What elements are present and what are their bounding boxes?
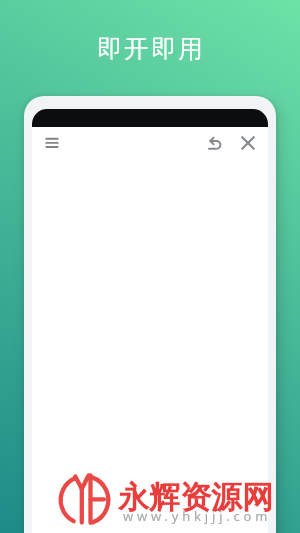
staticText: 永辉资源网 bbox=[118, 478, 273, 517]
staticText: 即开即用 bbox=[96, 33, 204, 64]
button[interactable] bbox=[201, 129, 229, 157]
staticText: www.yhkjjj.com bbox=[123, 507, 272, 525]
button[interactable] bbox=[234, 129, 262, 157]
button[interactable] bbox=[38, 128, 66, 156]
